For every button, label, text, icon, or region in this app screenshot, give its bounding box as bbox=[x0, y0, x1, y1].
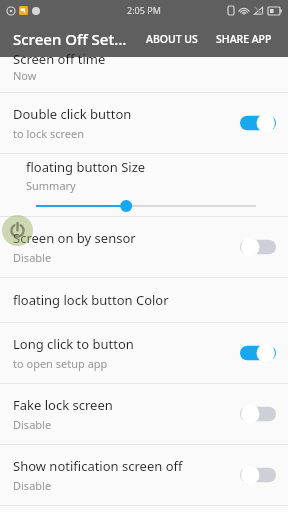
staticText: Disable bbox=[13, 417, 52, 432]
staticText: Long click to button bbox=[13, 335, 134, 353]
staticText: floating button Size bbox=[26, 158, 146, 176]
staticText: to lock screen bbox=[13, 126, 85, 141]
button[interactable]: Toggle on bbox=[240, 112, 276, 134]
staticText: Show notification screen off bbox=[13, 457, 183, 475]
staticText: Disable bbox=[13, 250, 52, 265]
staticText: Now bbox=[13, 68, 37, 83]
staticText: Screen off time bbox=[13, 50, 106, 68]
staticText: to open setup app bbox=[13, 356, 108, 371]
button[interactable]: Show notification screen off bbox=[0, 445, 288, 505]
staticText: Summary bbox=[26, 178, 76, 193]
button[interactable]: Toggle on bbox=[240, 342, 276, 364]
staticText: SHARE APP bbox=[216, 32, 272, 46]
staticText: 2:05 PM bbox=[127, 4, 161, 16]
button[interactable]: Screen on by sensor bbox=[0, 217, 288, 277]
staticText: floating lock button Color bbox=[13, 291, 169, 309]
staticText: Screen on by sensor bbox=[13, 229, 136, 247]
button[interactable]: Long click to button bbox=[0, 323, 288, 383]
button[interactable]: Screen Off Set… bbox=[13, 29, 127, 49]
button[interactable]: Double click button bbox=[0, 93, 288, 153]
staticText: Disable bbox=[13, 478, 52, 493]
staticText: Double click button bbox=[13, 105, 132, 123]
button[interactable]: floating button Size bbox=[0, 154, 288, 216]
staticText: Fake lock screen bbox=[13, 396, 113, 414]
button[interactable]: Screen off time bbox=[0, 57, 288, 92]
button[interactable]: Toggle off bbox=[240, 236, 276, 258]
button[interactable]: Size slider bbox=[36, 199, 256, 213]
button[interactable]: floating lock button Color bbox=[0, 278, 288, 322]
button[interactable]: SHARE APP bbox=[213, 26, 275, 52]
button[interactable]: Floating lock button bbox=[2, 215, 33, 246]
button[interactable]: ABOUT US bbox=[143, 26, 201, 52]
button[interactable]: Toggle off bbox=[240, 403, 276, 425]
button[interactable]: Toggle off bbox=[240, 464, 276, 486]
button[interactable]: Fake lock screen bbox=[0, 384, 288, 444]
staticText: ABOUT US bbox=[146, 32, 198, 46]
